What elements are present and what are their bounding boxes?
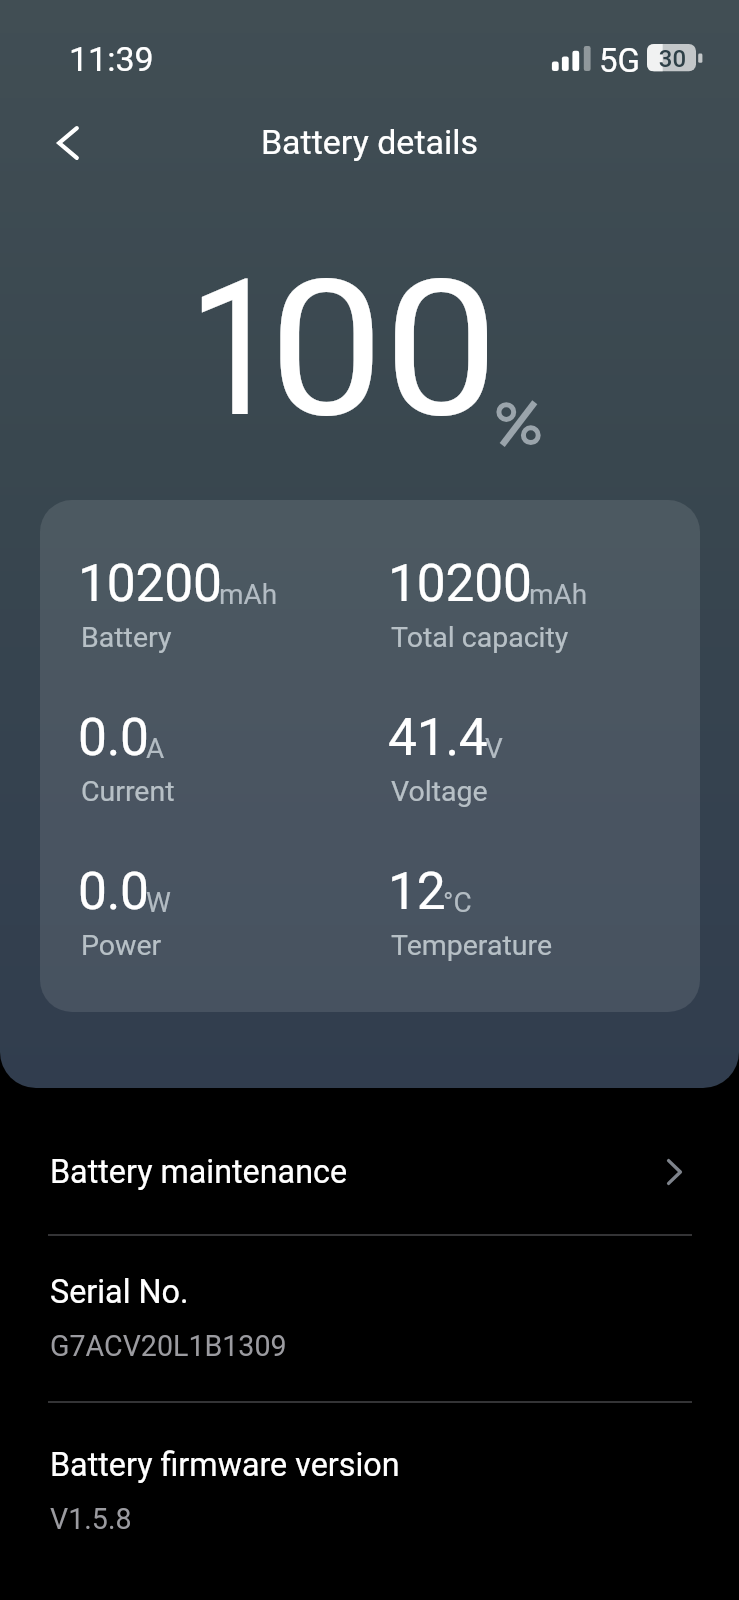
staticText: Current (81, 775, 175, 808)
staticText: 41.4 (388, 707, 488, 767)
staticText: A (146, 732, 165, 765)
staticText: 10200 (78, 553, 222, 613)
button[interactable]: Battery firmware version (0, 1444, 739, 1574)
staticText: 10200 (388, 553, 532, 613)
button[interactable]: Serial No. (0, 1271, 739, 1401)
staticText: V1.5.8 (50, 1502, 132, 1536)
staticText: Power (81, 929, 162, 962)
staticText: 12 (388, 861, 446, 921)
staticText: Battery (81, 621, 172, 654)
other: Battery maintenance (667, 1159, 682, 1185)
staticText: 1 (188, 238, 282, 461)
staticText: 0.0 (78, 707, 149, 767)
staticText: Battery firmware version (50, 1446, 400, 1484)
staticText: Battery maintenance (50, 1153, 348, 1191)
button[interactable]: Back (38, 113, 98, 173)
staticText: Serial No. (50, 1273, 189, 1311)
staticText: Voltage (391, 775, 488, 808)
staticText: Total capacity (391, 621, 569, 654)
staticText: mAh (529, 578, 588, 611)
button[interactable]: Battery maintenance (0, 1135, 739, 1234)
staticText: W (146, 886, 171, 919)
staticText: G7ACV20L1B1309 (50, 1329, 287, 1363)
staticText: Battery details (0, 122, 739, 162)
staticText: Temperature (391, 929, 552, 962)
staticText: V (485, 732, 503, 765)
staticText: 0.0 (78, 861, 149, 921)
staticText: °C (443, 886, 472, 919)
staticText: 11:39 (69, 39, 154, 79)
staticText: 00 (269, 238, 499, 461)
staticText: 30 (648, 45, 697, 73)
staticText: mAh (219, 578, 278, 611)
staticText: 5G (599, 41, 641, 80)
